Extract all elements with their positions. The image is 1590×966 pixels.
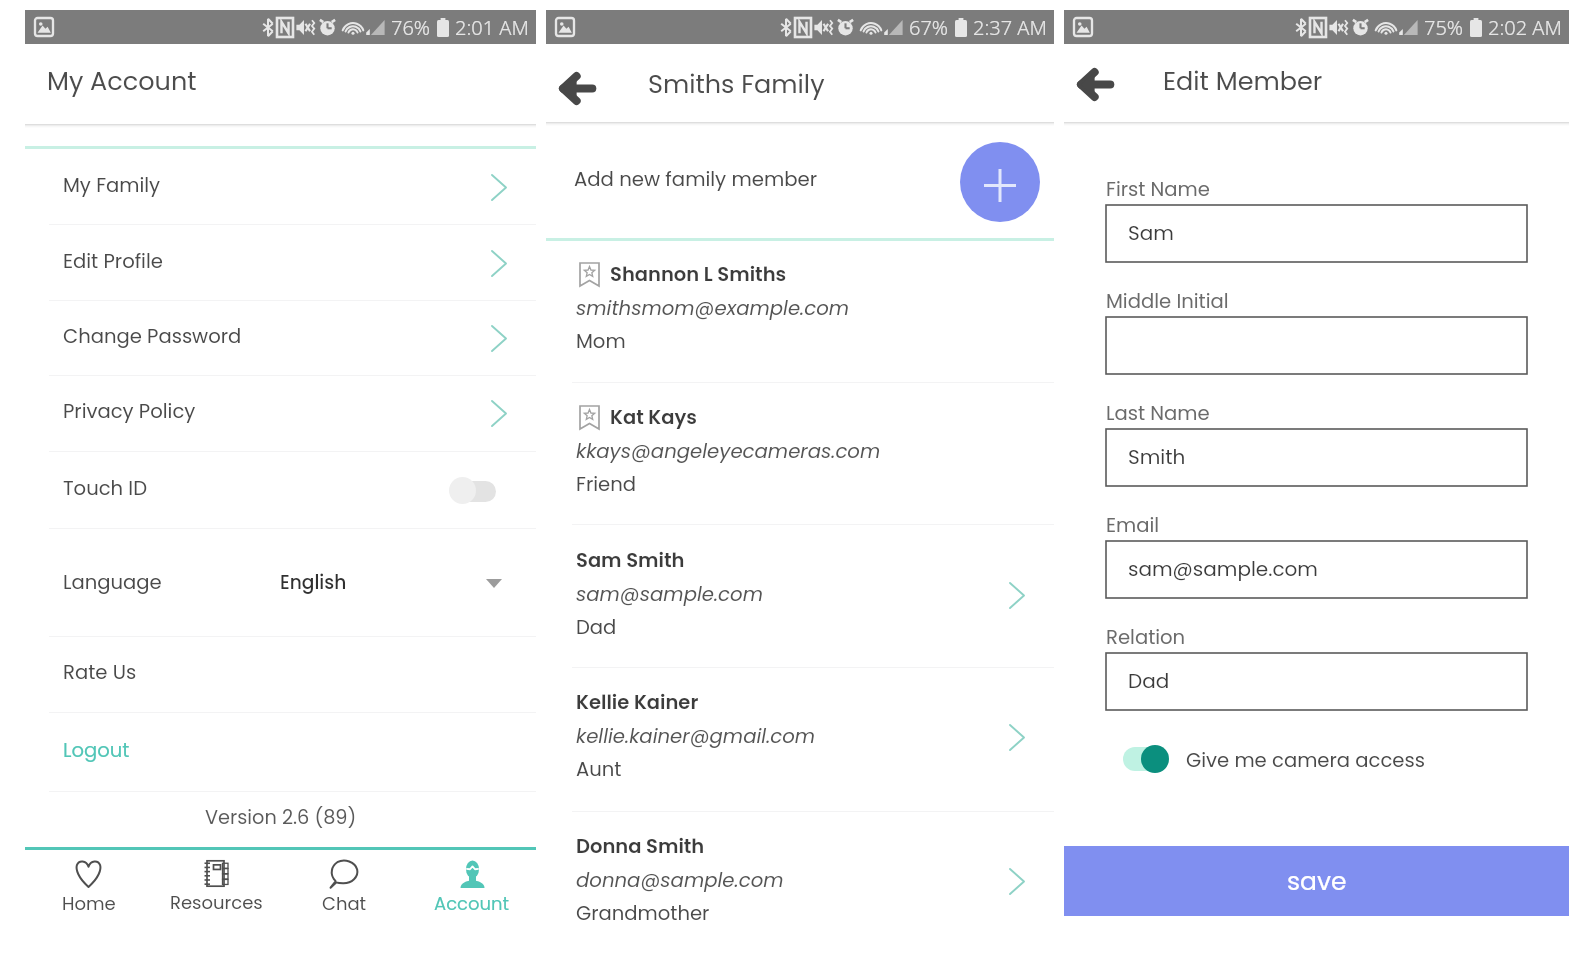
staticText: My Family: [63, 171, 161, 198]
button[interactable]: Account: [408, 851, 536, 922]
staticText: Logout: [63, 736, 130, 763]
button[interactable]: Dad: [1106, 653, 1527, 710]
staticText: Smiths Family: [648, 66, 825, 102]
button[interactable]: My Family: [25, 149, 536, 225]
button[interactable]: Touch ID toggle, off: [449, 475, 496, 505]
other: Give me camera access toggle, on: [1123, 744, 1169, 774]
staticText: smithsmom@example.com: [576, 294, 850, 322]
staticText: 2:01 AM: [455, 14, 529, 41]
button[interactable]: save: [1064, 846, 1569, 916]
staticText: Grandmother: [576, 899, 710, 926]
staticText: Aunt: [576, 755, 622, 782]
staticText: kkays@angeleyecameras.com: [576, 437, 881, 465]
staticText: Sam: [1128, 219, 1174, 247]
staticText: My Account: [47, 63, 197, 99]
staticText: Language: [63, 568, 162, 595]
staticText: save: [1287, 864, 1347, 899]
staticText: Chat: [322, 891, 367, 916]
staticText: Donna Smith: [576, 833, 705, 860]
button[interactable]: Chat: [280, 851, 408, 922]
staticText: Smith: [1128, 443, 1186, 471]
staticText: Version 2.6 (89): [205, 804, 357, 831]
staticText: 76%: [391, 14, 431, 41]
button[interactable]: sam@sample.com: [1106, 541, 1527, 598]
button[interactable]: Resources: [152, 851, 280, 922]
staticText: Friend: [576, 470, 636, 497]
staticText: Mom: [576, 327, 626, 354]
staticText: sam@sample.com: [576, 580, 763, 608]
staticText: Middle Initial: [1106, 287, 1229, 314]
button[interactable]: Kellie Kainer: [546, 668, 1054, 809]
staticText: Email: [1106, 511, 1160, 538]
staticText: 67%: [909, 14, 949, 41]
button[interactable]: Sam: [1106, 205, 1527, 262]
staticText: Sam Smith: [576, 547, 685, 574]
button[interactable]: Home: [25, 851, 152, 922]
button[interactable]: Shannon L Smiths: [546, 240, 1054, 381]
staticText: Edit Profile: [63, 247, 163, 274]
staticText: Kat Kays: [610, 404, 697, 431]
staticText: Kellie Kainer: [576, 689, 699, 716]
button[interactable]: Touch ID: [25, 452, 536, 528]
staticText: English: [280, 569, 347, 595]
button[interactable]: Donna Smith: [546, 812, 1054, 953]
button[interactable]: Back: [1070, 58, 1122, 110]
button[interactable]: Add family member: [960, 142, 1040, 222]
staticText: kellie.kainer@gmail.com: [576, 722, 816, 750]
staticText: 75%: [1424, 14, 1464, 41]
button[interactable]: [1106, 317, 1527, 374]
button[interactable]: Add new family member: [546, 126, 1054, 238]
staticText: Resources: [170, 890, 263, 915]
staticText: Rate Us: [63, 658, 137, 685]
staticText: donna@sample.com: [576, 866, 784, 894]
staticText: Privacy Policy: [63, 397, 196, 424]
button[interactable]: Kat Kays: [546, 383, 1054, 524]
button[interactable]: Change Password: [25, 301, 536, 375]
button[interactable]: Edit Profile: [25, 226, 536, 300]
staticText: Shannon L Smiths: [610, 261, 787, 288]
staticText: sam@sample.com: [1128, 555, 1318, 583]
staticText: Home: [62, 891, 116, 916]
staticText: Touch ID: [63, 474, 148, 501]
staticText: Change Password: [63, 322, 242, 349]
staticText: Dad: [1128, 667, 1170, 695]
button[interactable]: Sam Smith: [546, 526, 1054, 667]
staticText: Edit Member: [1163, 63, 1323, 99]
button[interactable]: Back: [552, 62, 604, 114]
staticText: 2:37 AM: [973, 14, 1047, 41]
button[interactable]: Smith: [1106, 429, 1527, 486]
button[interactable]: Logout: [25, 713, 536, 791]
staticText: Relation: [1106, 623, 1186, 650]
staticText: First Name: [1106, 175, 1210, 202]
button[interactable]: Rate Us: [25, 637, 536, 712]
staticText: Give me camera access: [1186, 746, 1425, 773]
staticText: Dad: [576, 613, 617, 640]
staticText: 2:02 AM: [1488, 14, 1562, 41]
button[interactable]: Give me camera access toggle, on: [1123, 744, 1425, 774]
staticText: Last Name: [1106, 399, 1210, 426]
staticText: Add new family member: [574, 165, 818, 193]
button[interactable]: Privacy Policy: [25, 376, 536, 451]
button[interactable]: Language: [25, 529, 536, 636]
staticText: Account: [434, 891, 510, 916]
